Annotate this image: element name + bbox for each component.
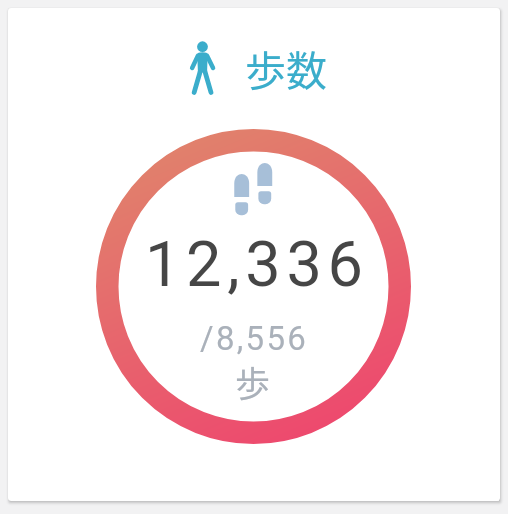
other: Footprints <box>234 163 273 215</box>
staticText: 歩 <box>235 356 271 407</box>
staticText: 歩数 <box>245 38 327 97</box>
other: Walking <box>189 41 217 95</box>
button[interactable]: Walking <box>8 8 500 501</box>
staticText: /8,556 <box>200 319 309 358</box>
staticText: 12,336 <box>145 228 369 302</box>
